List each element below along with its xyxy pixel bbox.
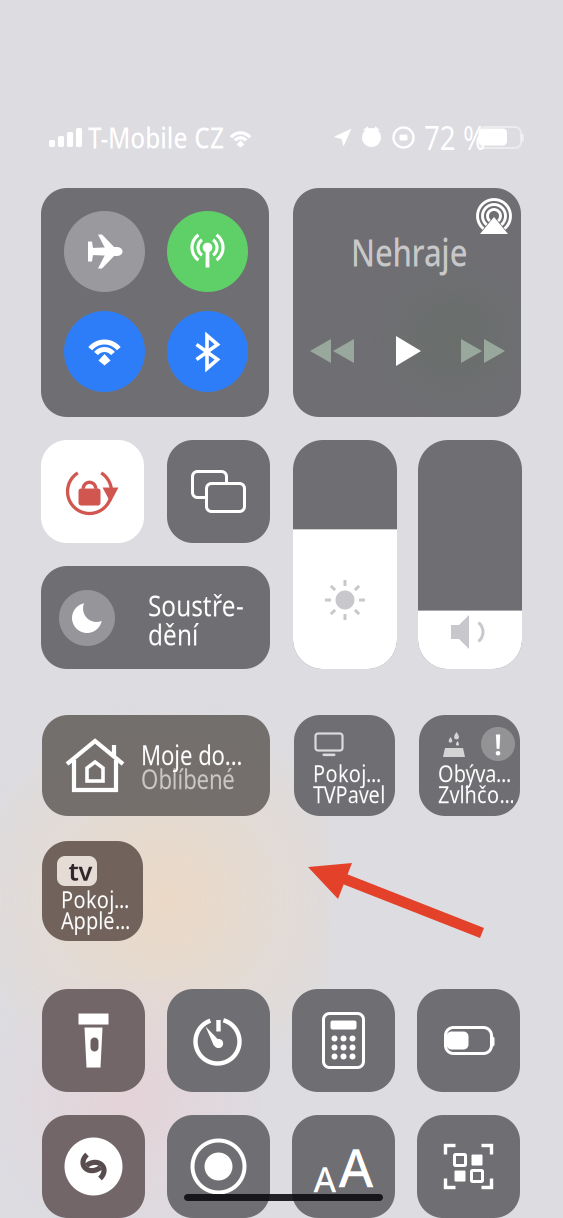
button[interactable]: Pokoj... (294, 715, 395, 816)
button[interactable]: Screen Recording (167, 1115, 270, 1218)
button[interactable]: Music Recognition (42, 1115, 145, 1218)
staticText: Pokoj... (61, 883, 143, 915)
staticText: tv (61, 854, 92, 888)
button[interactable]: Timer (167, 989, 270, 1092)
staticText: Nehraje (339, 227, 479, 277)
staticText: A (338, 1131, 373, 1202)
staticText: Apple... (61, 904, 144, 936)
button[interactable]: Soustře- (41, 566, 270, 669)
button[interactable]: Calculator (292, 989, 395, 1092)
staticText: Pokoj... (313, 757, 395, 789)
staticText: 72 % (424, 115, 499, 159)
button[interactable]: Low Power Mode (417, 989, 520, 1092)
button[interactable]: Bluetooth (167, 311, 248, 392)
staticText: A (313, 1156, 336, 1202)
staticText: T-Mobile CZ (88, 117, 252, 156)
staticText: dění (148, 614, 209, 653)
button[interactable]: Wi-Fi (64, 311, 145, 392)
button[interactable]: Play (392, 333, 424, 369)
button[interactable]: Rotation Lock (41, 440, 144, 543)
button[interactable]: Next (459, 333, 507, 369)
staticText: Oblíbené (141, 761, 254, 797)
button[interactable]: AirPlay (474, 196, 514, 238)
button[interactable]: Airplane Mode (64, 211, 145, 292)
button[interactable]: Text Size (292, 1115, 395, 1218)
button[interactable]: Screen Mirroring (167, 440, 270, 543)
button[interactable]: ! (419, 715, 520, 816)
staticText: Zvlhčo... (438, 778, 530, 810)
staticText: Moje do... (141, 737, 263, 773)
staticText: Soustře- (148, 585, 263, 624)
staticText: Obýva... (438, 757, 526, 789)
staticText: TVPavel (313, 778, 400, 810)
button[interactable]: Flashlight (42, 989, 145, 1092)
button[interactable]: Cellular Data (167, 211, 248, 292)
button[interactable]: tv (42, 841, 143, 941)
button[interactable]: Moje do... (42, 715, 270, 816)
button[interactable]: Previous (309, 333, 357, 369)
staticText: ! (494, 724, 502, 763)
button[interactable]: Code Scanner (417, 1115, 520, 1218)
